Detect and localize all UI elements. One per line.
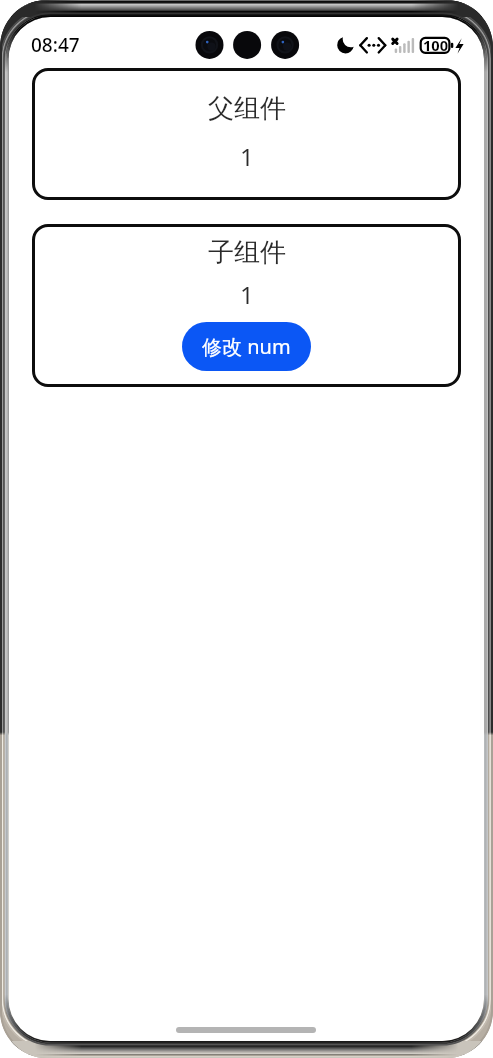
other: Status icons [9,17,485,62]
staticText: 1 [240,278,254,311]
staticText: 08:47 [31,32,80,58]
staticText: 子组件 [208,236,286,269]
other: Home indicator [176,1027,316,1033]
button[interactable]: 子组件 [32,224,461,387]
staticText: 100 [423,35,449,55]
button[interactable]: 修改 num [182,322,311,371]
staticText: 父组件 [208,92,286,125]
staticText: 1 [240,140,254,173]
staticText: 修改 num [202,333,291,360]
button[interactable]: 父组件 [32,68,461,200]
